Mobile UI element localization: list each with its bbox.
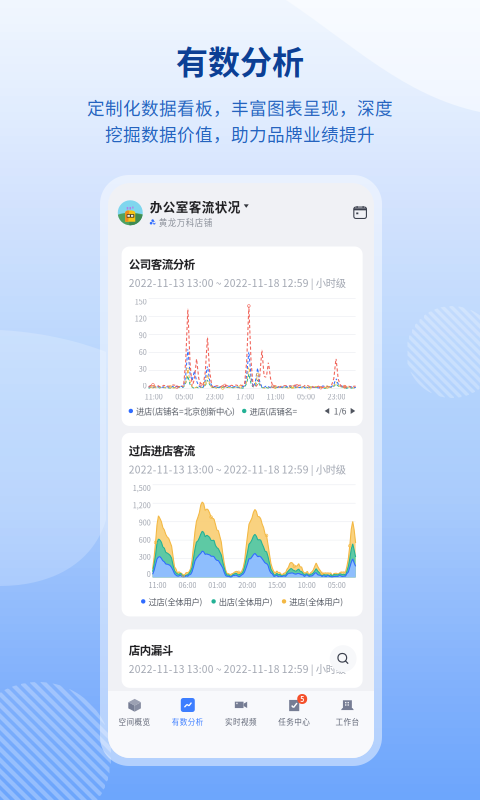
button[interactable]: 实时视频 — [214, 691, 268, 758]
button[interactable]: 有数分析 — [161, 691, 214, 758]
staticText: 300 — [139, 551, 151, 562]
button[interactable]: 上一页 — [325, 408, 330, 414]
button[interactable]: 空间概览 — [108, 691, 161, 758]
staticText: 办公室客流状况 — [150, 197, 241, 215]
staticText: 任务中心 — [278, 716, 310, 727]
staticText: 06:00 — [178, 580, 196, 590]
staticText: 120 — [135, 313, 147, 323]
staticText: 空间概览 — [119, 716, 151, 727]
staticText: 01:00 — [208, 580, 226, 590]
staticText: 23:00 — [327, 391, 345, 402]
staticText: 挖掘数据价值，助力品牌业绩提升 — [105, 121, 375, 146]
staticText: 2022-11-13 13:00 ~ 2022-11-18 12:59 | 小时… — [129, 461, 346, 476]
staticText: 有数分析 — [172, 716, 204, 727]
staticText: 工作台 — [335, 716, 359, 727]
staticText: 0 — [147, 569, 151, 579]
staticText: 有数分析 — [176, 37, 304, 83]
staticText: 2022-11-13 13:00 ~ 2022-11-18 12:59 | 小时… — [129, 661, 346, 676]
staticText: 定制化数据看板，丰富图表呈现，深度 — [87, 94, 393, 120]
staticText: 5 — [300, 694, 304, 704]
staticText: 出店(全体用户) — [219, 595, 273, 607]
button[interactable]: 工作台 — [321, 691, 374, 758]
button[interactable]: 日历 — [353, 205, 368, 220]
staticText: 05:00 — [175, 391, 193, 402]
staticText: 20:00 — [238, 580, 256, 590]
staticText: 黄龙万科店铺 — [159, 216, 213, 228]
staticText: 10:00 — [298, 580, 316, 590]
staticText: 2022-11-13 13:00 ~ 2022-11-18 12:59 | 小时… — [129, 275, 346, 290]
staticText: 过店(全体用户) — [148, 595, 202, 607]
staticText: 进店(店铺名= — [249, 405, 297, 417]
staticText: 1/6 — [334, 405, 347, 417]
staticText: 23:00 — [206, 391, 224, 402]
staticText: 05:00 — [328, 580, 346, 590]
staticText: 进店(店铺名=北京创新中心) — [136, 405, 235, 417]
staticText: 进店(全体用户) — [289, 595, 343, 607]
staticText: 公司客流分析 — [129, 255, 195, 272]
staticText: 900 — [139, 517, 151, 527]
staticText: 实时视频 — [225, 716, 257, 727]
staticText: 11:00 — [145, 391, 163, 402]
staticText: 过店进店客流 — [129, 442, 195, 458]
staticText: 11:00 — [149, 580, 167, 590]
button[interactable]: 下一页 — [351, 408, 356, 414]
staticText: 店内漏斗 — [129, 641, 173, 658]
staticText: 90 — [139, 330, 147, 340]
staticText: 1,200 — [133, 500, 151, 510]
staticText: 0 — [143, 380, 147, 391]
button[interactable]: 5 — [268, 691, 321, 758]
staticText: 1,500 — [133, 483, 151, 493]
staticText: 15:00 — [268, 580, 286, 590]
staticText: 17:00 — [236, 391, 254, 402]
staticText: 30 — [139, 363, 147, 374]
staticText: 600 — [139, 534, 151, 545]
button[interactable]: 搜索 — [330, 645, 357, 672]
staticText: 150 — [135, 296, 147, 307]
staticText: 05:00 — [297, 391, 315, 402]
staticText: 60 — [139, 347, 147, 357]
staticText: 11:00 — [267, 391, 285, 402]
